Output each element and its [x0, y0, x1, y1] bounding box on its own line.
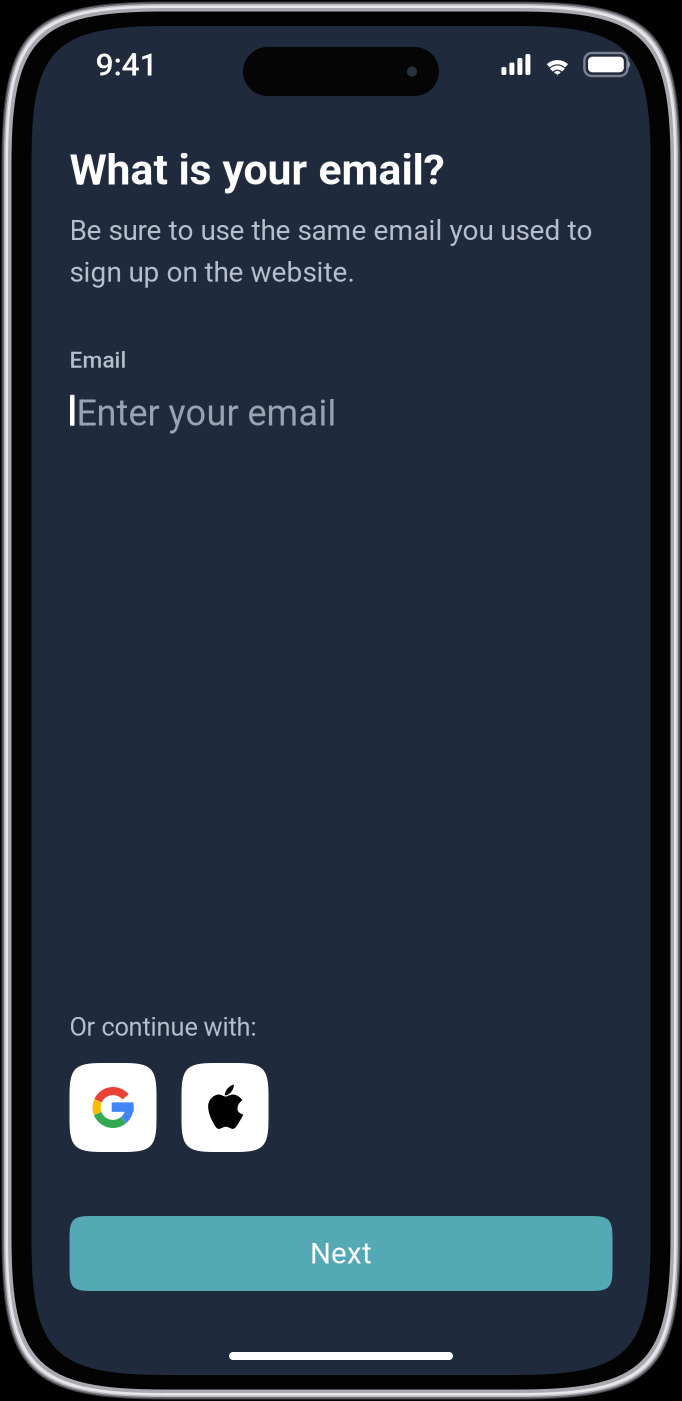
staticText: What is your email? [69, 145, 444, 195]
button[interactable]: Continue with Google [69, 1063, 156, 1152]
button[interactable]: Continue with Apple [181, 1063, 268, 1152]
staticText: Next [310, 1236, 372, 1271]
staticText: Email [69, 347, 126, 373]
staticText: Or continue with: [69, 1012, 256, 1042]
staticText: Be sure to use the same email you used t… [69, 214, 592, 289]
staticText: 9:41 [95, 46, 157, 83]
button[interactable]: Next [69, 1216, 612, 1291]
staticText: Enter your email [76, 392, 336, 434]
